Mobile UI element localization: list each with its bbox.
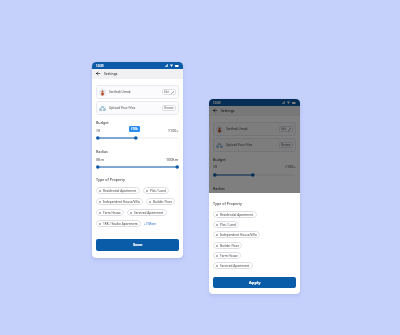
button[interactable]: [96, 136, 179, 140]
staticText: Budget: [213, 157, 226, 162]
staticText: Radius: [96, 149, 108, 154]
button[interactable]: [213, 173, 296, 177]
staticText: ₹100+: [285, 164, 296, 169]
staticText: Builder Floor: [220, 244, 239, 248]
staticText: Farm House: [103, 211, 121, 215]
staticText: ₹0: [96, 128, 101, 133]
staticText: Type of Property: [213, 201, 242, 206]
button[interactable]: Browse: [281, 142, 291, 148]
button[interactable]: Builder Floor: [216, 242, 239, 249]
button[interactable]: Serviced Apartment: [130, 209, 164, 216]
staticText: Plot / Land: [150, 189, 166, 193]
button[interactable]: Save: [96, 239, 179, 251]
staticText: Edit: [281, 127, 287, 131]
staticText: Farm House: [220, 254, 238, 258]
staticText: Save: [133, 242, 143, 248]
staticText: 12:30: [213, 101, 221, 105]
staticText: 12:30: [96, 64, 104, 68]
staticText: ₹0: [213, 164, 218, 169]
button[interactable]: Residential Apartment: [216, 211, 254, 218]
staticText: Independent House/Villa: [103, 200, 140, 204]
staticText: Apply: [249, 280, 261, 286]
staticText: Upload Your Files: [226, 143, 253, 147]
button[interactable]: Farm House: [99, 209, 121, 216]
button[interactable]: Upload Your Files: [213, 138, 296, 152]
staticText: Residential Apartment: [103, 189, 137, 193]
staticText: Settings: [104, 71, 118, 76]
staticText: Type of Property: [96, 177, 125, 182]
button[interactable]: Browse: [164, 105, 174, 111]
button[interactable]: [96, 165, 179, 169]
button[interactable]: Farm House: [216, 252, 238, 259]
button[interactable]: Residential Apartment: [99, 187, 137, 194]
staticText: ₹100+: [168, 128, 179, 133]
staticText: Settings: [221, 108, 235, 113]
staticText: Browse: [281, 143, 291, 147]
staticText: Plot / Land: [220, 223, 236, 227]
staticText: Sarthak Umak: [226, 127, 248, 131]
staticText: Independent House/Villa: [220, 233, 257, 237]
button[interactable]: +7 More: [144, 222, 157, 226]
staticText: ₹10k: [131, 127, 138, 131]
staticText: 1RK / Studio Apartment: [103, 222, 138, 226]
button[interactable]: Independent House/Villa: [99, 198, 140, 205]
button[interactable]: Edit: [164, 89, 174, 95]
staticText: Radius: [213, 186, 225, 191]
staticText: Browse: [164, 106, 174, 110]
button[interactable]: Apply: [213, 277, 296, 288]
button[interactable]: Sarthak Umak: [213, 122, 296, 136]
staticText: 100Km: [166, 157, 179, 162]
staticText: Budget: [96, 120, 109, 125]
button[interactable]: Plot / Land: [216, 221, 236, 228]
staticText: Builder Floor: [153, 200, 172, 204]
button[interactable]: Sarthak Umak: [96, 85, 179, 99]
button[interactable]: Plot / Land: [146, 187, 166, 194]
staticText: 0Km: [96, 157, 104, 162]
button[interactable]: Edit: [281, 126, 291, 132]
button[interactable]: Builder Floor: [149, 198, 172, 205]
staticText: Serviced Apartment: [220, 264, 250, 268]
button[interactable]: Serviced Apartment: [216, 262, 250, 269]
staticText: Upload Your Files: [109, 106, 136, 110]
button[interactable]: Independent House/Villa: [216, 231, 257, 238]
button[interactable]: Back: [211, 107, 218, 114]
button[interactable]: Back: [94, 70, 101, 77]
staticText: Edit: [164, 90, 170, 94]
button[interactable]: Upload Your Files: [96, 101, 179, 115]
staticText: Serviced Apartment: [134, 211, 164, 215]
staticText: Sarthak Umak: [109, 90, 131, 94]
staticText: Residential Apartment: [220, 213, 254, 217]
button[interactable]: 1RK / Studio Apartment: [99, 220, 138, 227]
